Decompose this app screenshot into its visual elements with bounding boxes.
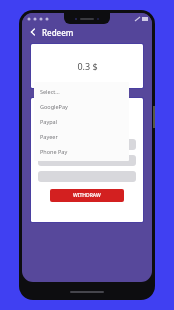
staticText: 0.3 $	[77, 60, 98, 72]
button[interactable]: 0.3 $	[31, 44, 143, 88]
button[interactable]: Paypal	[34, 114, 129, 129]
button[interactable]: Back	[26, 25, 40, 39]
button[interactable]: Select...	[34, 84, 129, 99]
staticText: Select...	[40, 88, 60, 95]
button[interactable]: WITHDRAW	[50, 189, 124, 202]
button[interactable]	[38, 139, 136, 150]
staticText: Minimum withdraw is 10$	[54, 122, 121, 129]
button[interactable]: Payeer	[34, 129, 129, 144]
button[interactable]: GooglePay	[34, 99, 129, 114]
staticText: Paypal	[40, 118, 58, 125]
staticText: Payeer	[40, 133, 58, 140]
staticText: GooglePay	[40, 103, 68, 110]
button[interactable]: Phone Pay	[34, 144, 129, 159]
staticText: Phone Pay	[40, 148, 68, 155]
staticText: Redeem	[42, 27, 74, 38]
button[interactable]	[38, 155, 136, 166]
staticText: WITHDRAW	[73, 192, 101, 199]
